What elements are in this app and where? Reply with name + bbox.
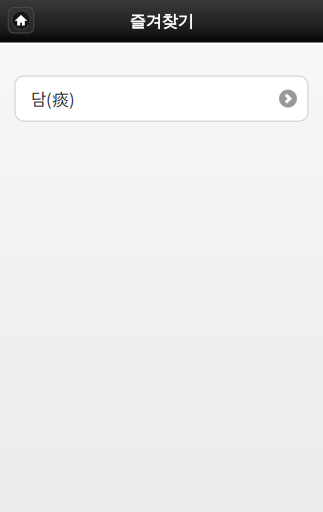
staticText: 즐겨찾기 — [129, 11, 193, 32]
button[interactable]: 담(痰) — [15, 76, 308, 121]
staticText: 담(痰) — [31, 86, 75, 111]
button[interactable]: Home — [4, 3, 38, 37]
